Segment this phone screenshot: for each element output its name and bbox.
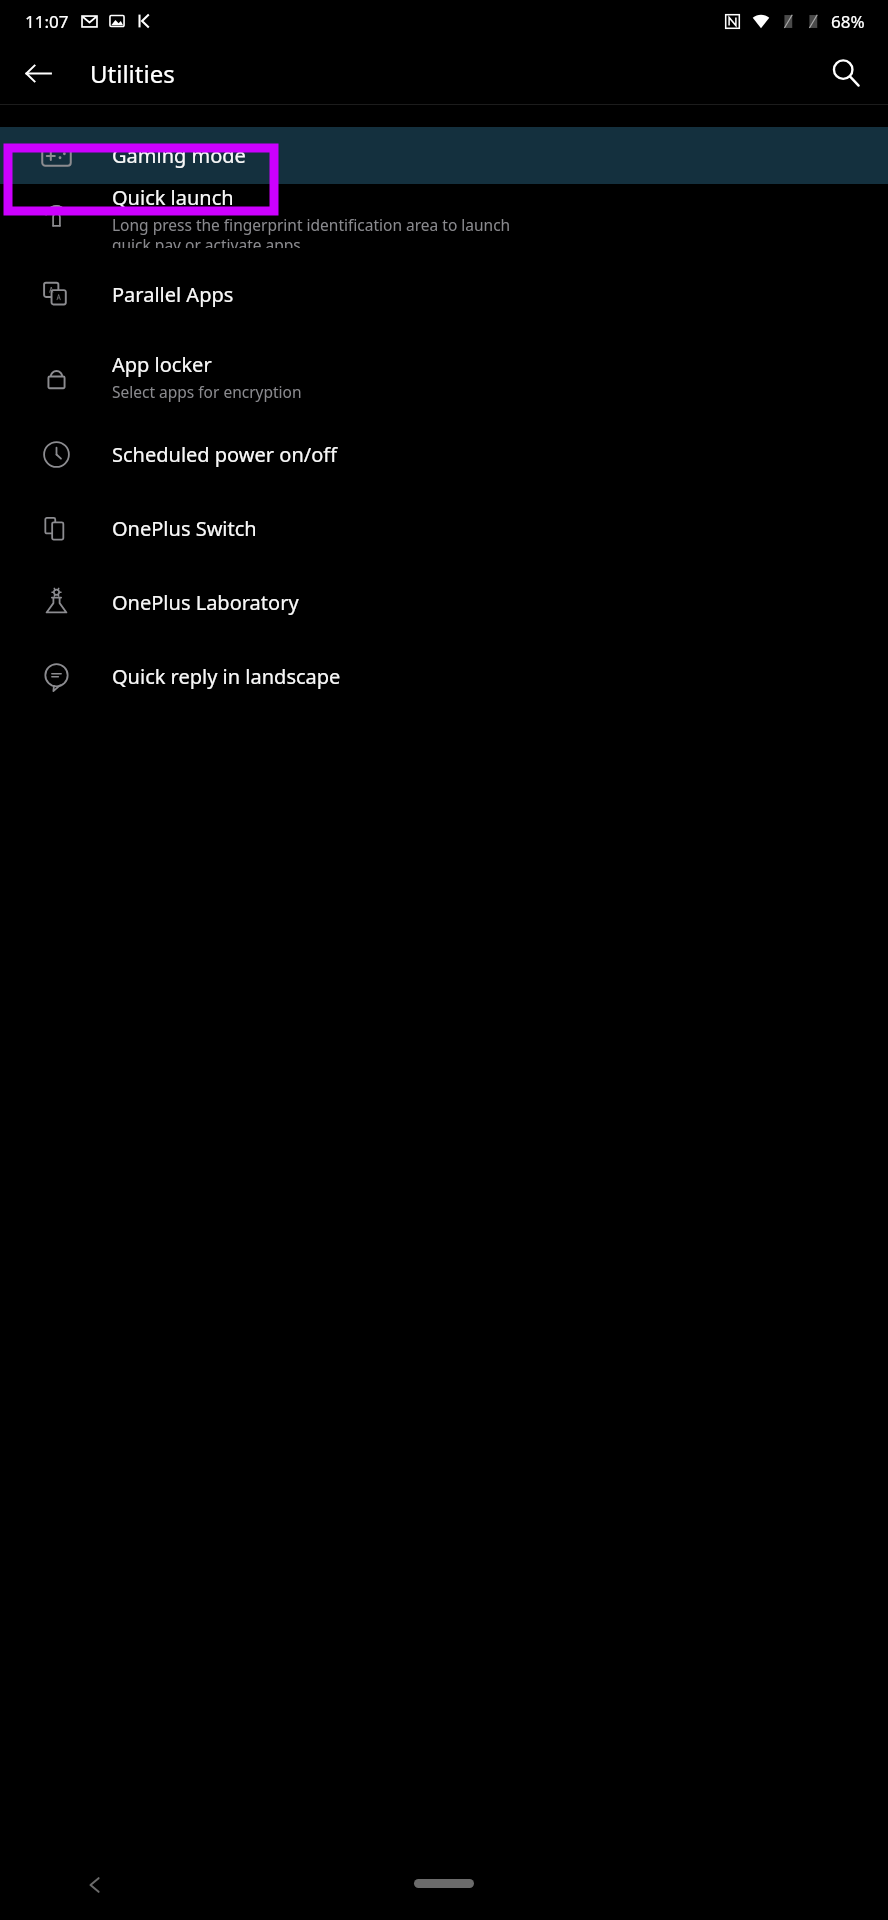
staticText: 68%: [831, 10, 865, 33]
button[interactable]: OnePlus Laboratory: [0, 578, 888, 626]
staticText: Long press the fingerprint identificatio…: [112, 214, 511, 248]
button[interactable]: Back: [68, 1858, 122, 1912]
button[interactable]: Back: [8, 43, 68, 103]
button[interactable]: OnePlus Switch: [0, 504, 888, 552]
button[interactable]: Home: [414, 1879, 474, 1888]
staticText: Scheduled power on/off: [112, 441, 338, 468]
staticText: Select apps for encryption: [112, 381, 302, 402]
button[interactable]: Quick reply in landscape: [0, 652, 888, 700]
button[interactable]: Parallel Apps: [0, 270, 888, 318]
staticText: Utilities: [90, 57, 175, 90]
staticText: Parallel Apps: [112, 281, 234, 308]
button[interactable]: App locker: [0, 344, 888, 408]
staticText: App locker: [112, 351, 212, 378]
staticText: OnePlus Switch: [112, 515, 257, 542]
staticText: 11:07: [25, 10, 69, 33]
button[interactable]: Scheduled power on/off: [0, 430, 888, 478]
button[interactable]: Quick launch: [0, 184, 888, 248]
staticText: Quick launch: [112, 184, 234, 211]
button[interactable]: Gaming mode: [0, 127, 888, 184]
button[interactable]: Search: [816, 43, 876, 103]
staticText: Quick reply in landscape: [112, 663, 341, 690]
staticText: OnePlus Laboratory: [112, 589, 299, 616]
staticText: Gaming mode: [112, 142, 246, 169]
